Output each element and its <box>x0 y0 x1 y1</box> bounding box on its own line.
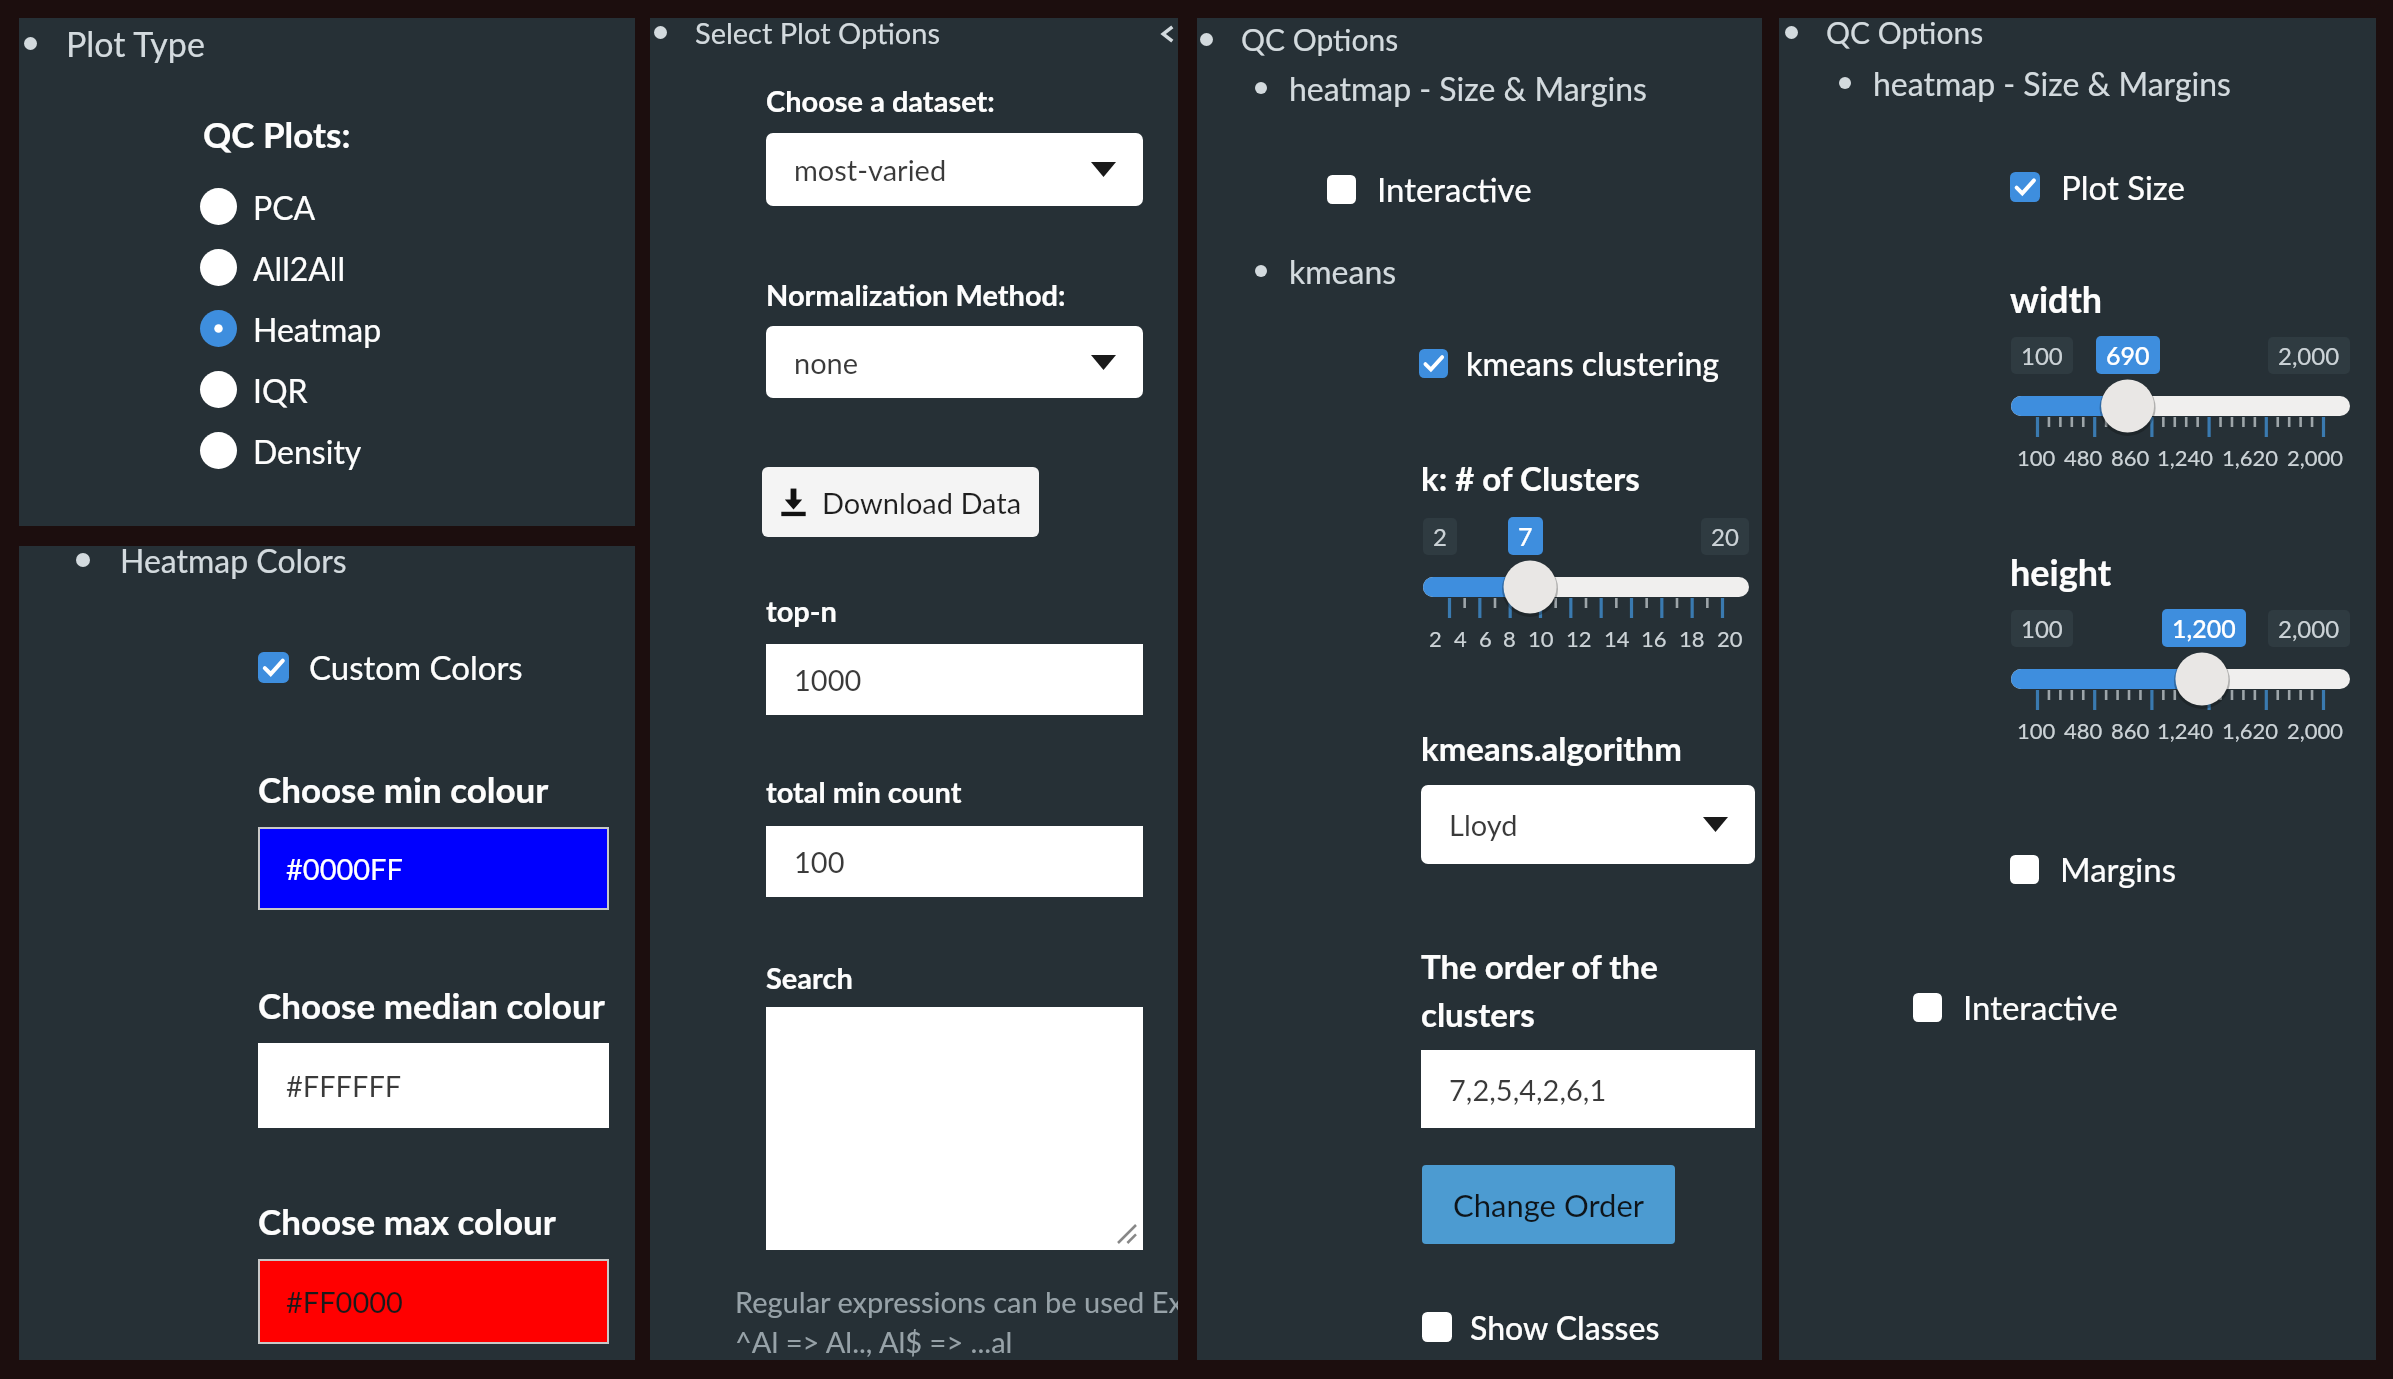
staticText: 1,240 <box>2157 444 2214 470</box>
staticText: Choose max colour <box>258 1200 556 1242</box>
staticText: most-varied <box>794 152 947 187</box>
other: Slider, value 1,200 <box>2011 609 2350 743</box>
staticText: #FFFFFF <box>286 1068 402 1103</box>
staticText: 100 <box>2017 717 2056 743</box>
button[interactable]: Download Data <box>762 467 1039 537</box>
button[interactable]: 100 <box>766 826 1143 897</box>
staticText: 690 <box>2106 340 2150 370</box>
button[interactable]: Heatmap <box>200 300 382 357</box>
staticText: clusters <box>1421 994 1535 1034</box>
button[interactable]: none <box>766 326 1143 398</box>
staticText: 1000 <box>794 662 862 697</box>
staticText: 100 <box>2021 341 2063 370</box>
staticText: heatmap - Size & Margins <box>1873 64 2231 102</box>
button[interactable]: Interactive <box>1327 169 1532 209</box>
button[interactable]: kmeans clustering <box>1419 344 1720 382</box>
button[interactable]: IQR <box>200 361 308 418</box>
button[interactable]: Change Order <box>1422 1165 1675 1244</box>
staticText: 100 <box>794 844 845 879</box>
button[interactable]: Margins <box>2010 849 2176 889</box>
staticText: 1,240 <box>2157 717 2214 743</box>
button[interactable]: 7,2,5,4,2,6,1 <box>1421 1050 1755 1128</box>
button[interactable]: All2All <box>200 239 345 296</box>
staticText: Heatmap Colors <box>120 546 347 579</box>
staticText: #FF0000 <box>286 1284 403 1319</box>
staticText: Plot Type <box>66 23 205 64</box>
staticText: Margins <box>2060 849 2176 889</box>
staticText: kmeans clustering <box>1466 344 1720 382</box>
staticText: Show Classes <box>1470 1308 1660 1346</box>
staticText: 20 <box>1711 522 1739 551</box>
staticText: 6 <box>1479 625 1492 651</box>
button[interactable]: most-varied <box>766 133 1143 206</box>
staticText: IQR <box>253 371 308 409</box>
staticText: Plot Size <box>2061 167 2185 207</box>
staticText: top-n <box>766 593 837 628</box>
staticText: height <box>2010 550 2112 593</box>
staticText: Normalization Method: <box>766 277 1066 312</box>
staticText: 8 <box>1503 625 1516 651</box>
button[interactable]: #FF0000 <box>258 1259 609 1344</box>
staticText: 7,2,5,4,2,6,1 <box>1449 1072 1607 1107</box>
button[interactable]: Interactive <box>1913 987 2118 1027</box>
staticText: 2,000 <box>2287 717 2344 743</box>
button[interactable]: Custom Colors <box>258 647 523 687</box>
staticText: Download Data <box>822 485 1022 520</box>
staticText: Custom Colors <box>309 647 523 687</box>
staticText: total min count <box>766 774 962 809</box>
staticText: 100 <box>2017 444 2056 470</box>
staticText: QC Plots: <box>203 113 351 155</box>
staticText: Interactive <box>1963 987 2118 1027</box>
staticText: k: # of Clusters <box>1421 458 1640 498</box>
button[interactable]: Plot Size <box>2010 167 2185 207</box>
staticText: width <box>2010 277 2103 320</box>
staticText: Change Order <box>1453 1186 1645 1223</box>
staticText: 480 <box>2064 444 2103 470</box>
button[interactable]: 1000 <box>766 644 1143 715</box>
button[interactable]: Lloyd <box>1421 785 1755 864</box>
button[interactable] <box>766 1007 1143 1250</box>
staticText: 860 <box>2111 717 2150 743</box>
staticText: heatmap - Size & Margins <box>1289 69 1647 107</box>
staticText: ^Al => Al.., Al$ => ...al <box>735 1324 1013 1359</box>
staticText: kmeans <box>1289 252 1397 290</box>
staticText: The order of the <box>1421 946 1658 986</box>
staticText: 14 <box>1604 625 1630 651</box>
staticText: Select Plot Options <box>695 18 940 50</box>
staticText: Density <box>253 432 362 470</box>
staticText: 2,000 <box>2287 444 2344 470</box>
staticText: kmeans.algorithm <box>1421 728 1682 768</box>
button[interactable]: Show Classes <box>1422 1308 1660 1346</box>
staticText: All2All <box>253 249 345 287</box>
staticText: 2,000 <box>2278 614 2340 643</box>
staticText: PCA <box>253 188 316 226</box>
staticText: 1,620 <box>2222 444 2279 470</box>
staticText: 10 <box>1528 625 1554 651</box>
staticText: 860 <box>2111 444 2150 470</box>
staticText: 7 <box>1518 521 1533 551</box>
button[interactable]: #0000FF <box>258 827 609 910</box>
staticText: 2 <box>1433 522 1447 551</box>
staticText: 100 <box>2021 614 2063 643</box>
staticText: 2 <box>1429 625 1442 651</box>
staticText: QC Options <box>1241 21 1399 57</box>
other: Slider, value 7 <box>1423 517 1749 651</box>
staticText: 480 <box>2064 717 2103 743</box>
staticText: QC Options <box>1826 18 1984 50</box>
button[interactable]: Density <box>200 422 362 479</box>
staticText: Search <box>766 960 853 995</box>
staticText: Heatmap <box>253 310 382 348</box>
button[interactable]: PCA <box>200 178 316 235</box>
staticText: Choose a dataset: <box>766 83 995 118</box>
staticText: 16 <box>1641 625 1667 651</box>
button[interactable]: Collapse panel <box>1156 22 1178 46</box>
staticText: 18 <box>1679 625 1705 651</box>
staticText: 1,200 <box>2172 613 2236 643</box>
staticText: Interactive <box>1377 169 1532 209</box>
staticText: Regular expressions can be used Ex: <box>735 1284 1178 1319</box>
staticText: 1,620 <box>2222 717 2279 743</box>
staticText: 12 <box>1566 625 1592 651</box>
staticText: none <box>794 345 859 380</box>
staticText: Lloyd <box>1449 807 1518 842</box>
button[interactable]: #FFFFFF <box>258 1043 609 1128</box>
